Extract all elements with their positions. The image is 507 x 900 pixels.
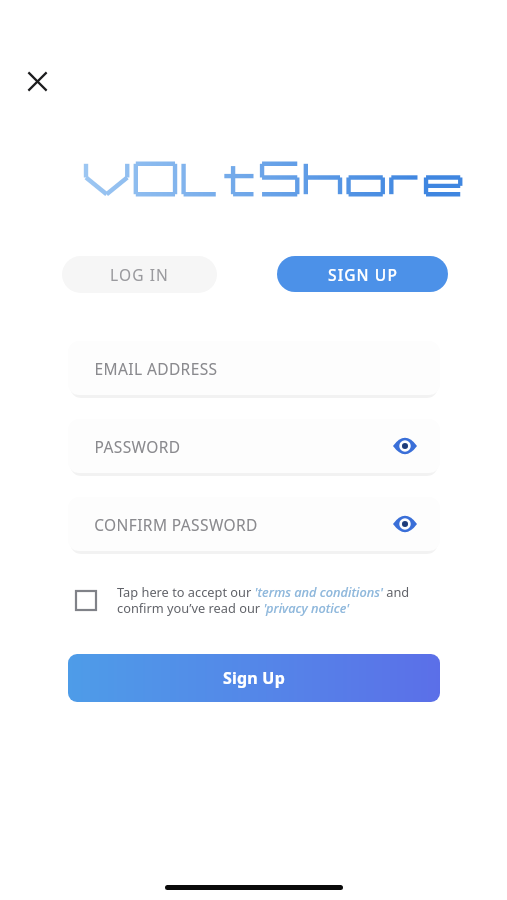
staticText: SIGN UP [328, 264, 398, 285]
button[interactable]: PASSWORD [68, 419, 440, 473]
button[interactable]: Show password [388, 429, 422, 463]
staticText: EMAIL ADDRESS [94, 358, 218, 379]
button[interactable]: LOG IN [62, 256, 217, 293]
button[interactable]: Show confirm password [388, 507, 422, 541]
button[interactable]: Close [19, 63, 55, 99]
button[interactable]: EMAIL ADDRESS [68, 341, 440, 395]
staticText: PASSWORD [94, 436, 181, 457]
staticText: LOG IN [110, 264, 169, 285]
staticText: CONFIRM PASSWORD [94, 514, 258, 535]
button[interactable]: CONFIRM PASSWORD [68, 497, 440, 551]
button[interactable]: SIGN UP [277, 256, 448, 292]
button[interactable]: Sign Up [68, 654, 440, 702]
staticText: Sign Up [223, 667, 285, 689]
button[interactable]: Tap here to accept our 'terms and condit… [68, 572, 440, 628]
staticText: Tap here to accept our 'terms and condit… [117, 583, 440, 617]
